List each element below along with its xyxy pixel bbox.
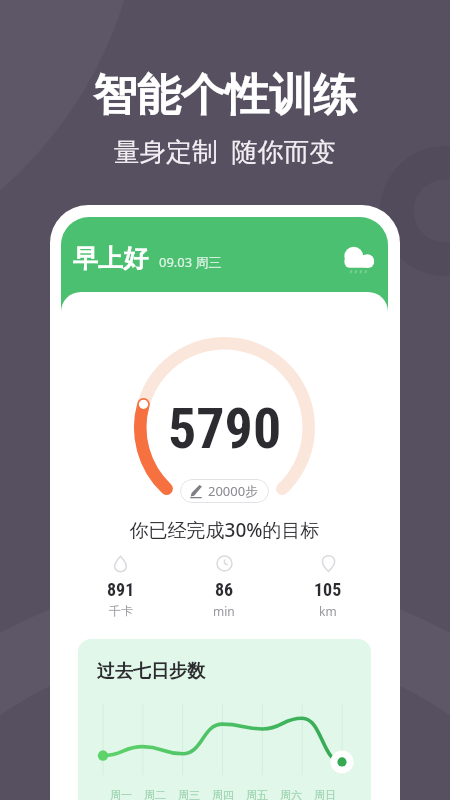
staticText: 千卡 xyxy=(109,603,133,618)
staticText: 早上好 xyxy=(73,243,148,274)
staticText: 周五 xyxy=(246,788,268,800)
staticText: 智能个性训练 xyxy=(93,68,357,123)
button[interactable]: 891 xyxy=(69,555,172,618)
staticText: 周四 xyxy=(212,788,234,800)
staticText: 周一 xyxy=(110,788,132,800)
button[interactable]: 86 xyxy=(172,555,276,619)
staticText: 891 xyxy=(107,579,135,600)
staticText: 周二 xyxy=(144,788,166,800)
staticText: 周六 xyxy=(280,788,302,800)
staticText: 105 xyxy=(314,579,342,600)
staticText: 5790 xyxy=(168,396,282,462)
staticText: 你已经完成30%的目标 xyxy=(61,517,388,543)
staticText: 09.03 周三 xyxy=(159,253,222,271)
button[interactable]: 105 xyxy=(276,555,380,619)
staticText: 周日 xyxy=(314,788,336,800)
staticText: min xyxy=(213,603,235,619)
staticText: km xyxy=(319,603,337,619)
staticText: 量身定制 随你而变 xyxy=(114,133,336,169)
button[interactable]: Weather xyxy=(342,241,376,275)
staticText: 20000步 xyxy=(208,482,259,500)
staticText: 过去七日步数 xyxy=(97,660,205,683)
button[interactable]: 20000步 xyxy=(180,479,269,503)
staticText: 周三 xyxy=(178,788,200,800)
staticText: 86 xyxy=(215,579,234,600)
